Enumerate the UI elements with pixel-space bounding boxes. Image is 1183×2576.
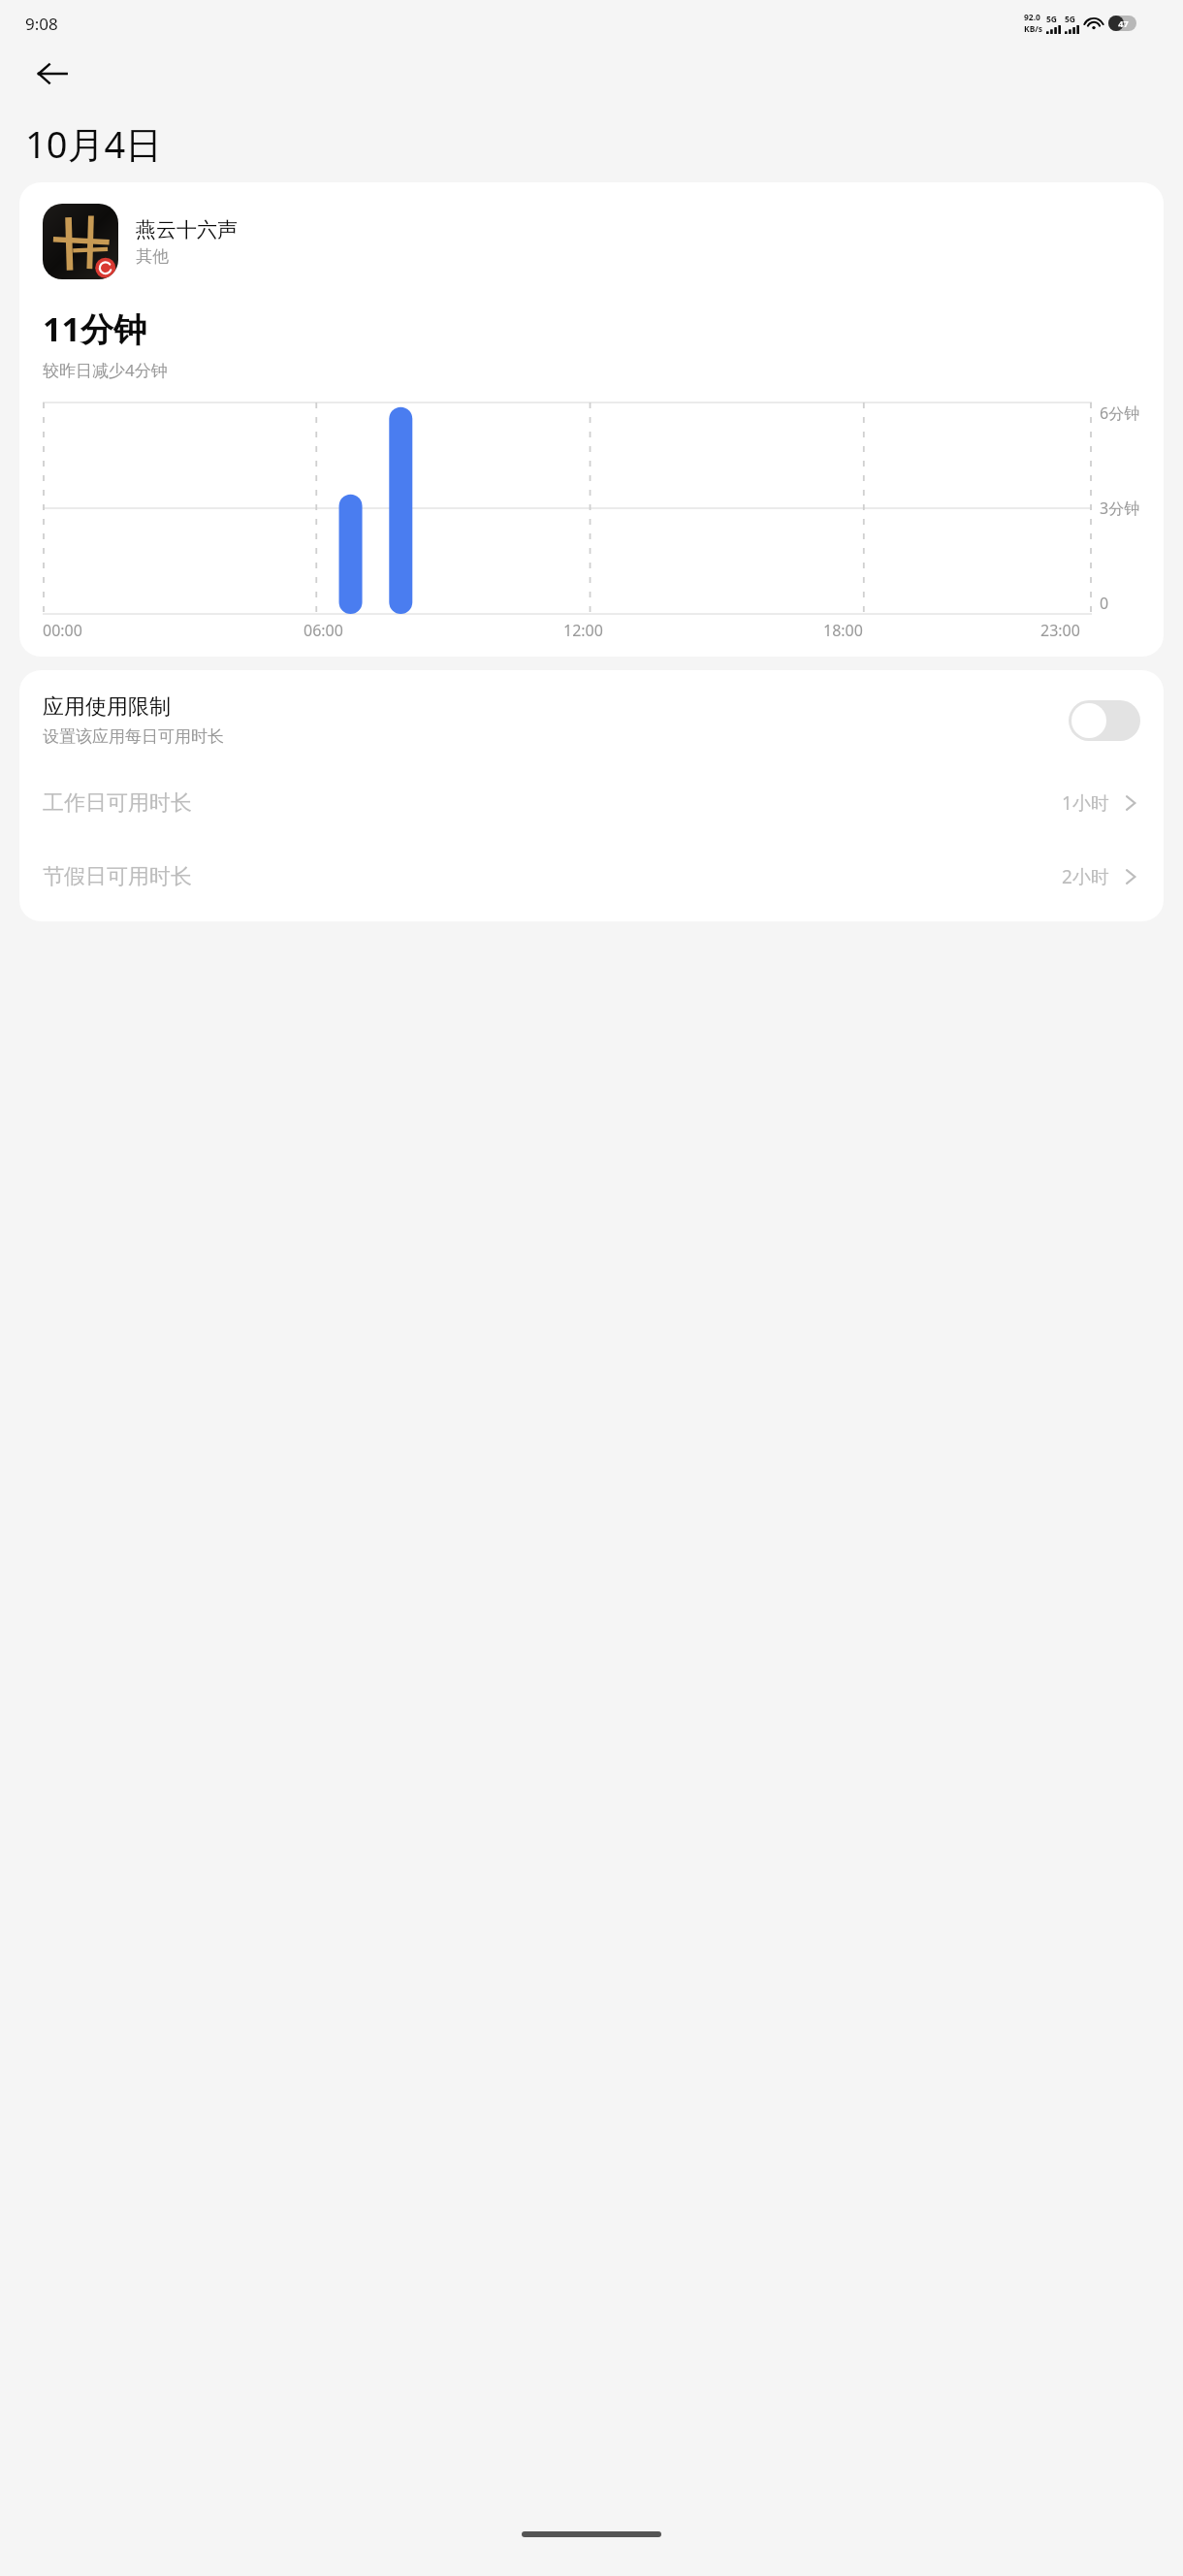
- staticText: 1小时: [1062, 790, 1109, 816]
- button[interactable]: 工作日可用时长: [19, 766, 1164, 840]
- staticText: 10月4日: [25, 118, 163, 169]
- staticText: 9:08: [25, 13, 58, 35]
- staticText: 燕云十六声: [136, 217, 238, 242]
- staticText: 5G: [1046, 14, 1058, 25]
- staticText: 06:00: [304, 620, 343, 641]
- staticText: 工作日可用时长: [43, 789, 1062, 817]
- staticText: 节假日可用时长: [43, 863, 1062, 890]
- button[interactable]: 节假日可用时长: [19, 840, 1164, 914]
- staticText: 0: [1100, 593, 1109, 614]
- staticText: 其他: [136, 246, 169, 267]
- staticText: 设置该应用每日可用时长: [43, 726, 224, 747]
- staticText: 5G: [1065, 14, 1076, 25]
- staticText: 00:00: [43, 620, 82, 641]
- staticText: 12:00: [563, 620, 603, 641]
- staticText: 3分钟: [1100, 498, 1140, 519]
- staticText: 6分钟: [1100, 402, 1140, 424]
- staticText: 2小时: [1062, 864, 1109, 889]
- staticText: 18:00: [823, 620, 863, 641]
- button[interactable]: 燕云十六声: [19, 182, 1164, 657]
- staticText: 23:00: [1040, 620, 1080, 641]
- button[interactable]: Back: [25, 47, 80, 101]
- button[interactable]: 应用使用限制开关: [1069, 700, 1140, 741]
- staticText: 应用使用限制: [43, 693, 171, 721]
- staticText: 较昨日减少4分钟: [43, 359, 168, 381]
- staticText: 11分钟: [43, 306, 146, 351]
- button[interactable]: 应用使用限制: [19, 670, 1164, 766]
- staticText: KB/s: [1024, 23, 1043, 35]
- staticText: 47: [1118, 17, 1129, 29]
- staticText: 92.0: [1024, 12, 1040, 23]
